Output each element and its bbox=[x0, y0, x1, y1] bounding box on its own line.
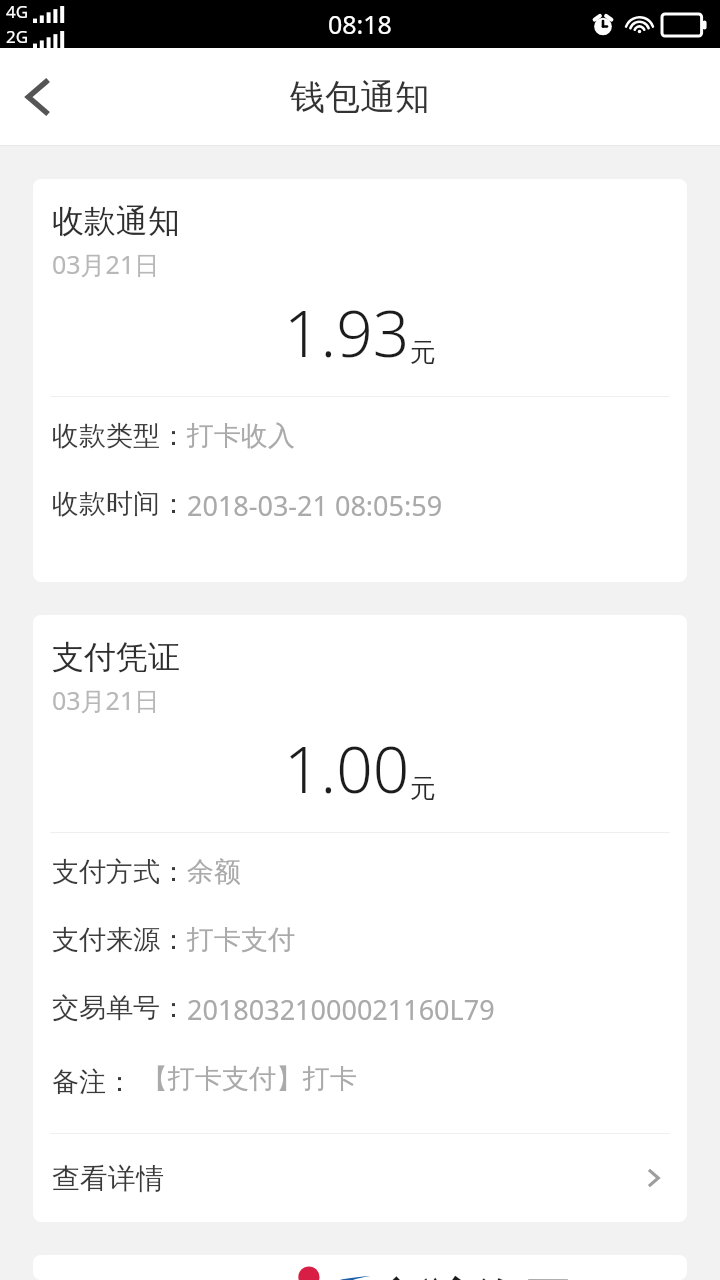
staticText: 1.93 bbox=[284, 289, 410, 376]
staticText: 收款类型： bbox=[52, 419, 187, 453]
staticText: 余额 bbox=[187, 855, 241, 889]
staticText: 支付来源： bbox=[52, 923, 187, 957]
button[interactable]: 支付凭证 bbox=[33, 615, 687, 1222]
staticText: 20180321000021160L79 bbox=[187, 991, 495, 1028]
staticText: 03月21日 bbox=[52, 683, 160, 717]
staticText: 03月21日 bbox=[52, 247, 160, 281]
button[interactable]: Back bbox=[0, 59, 76, 135]
button[interactable]: 收款通知 bbox=[33, 179, 687, 582]
button[interactable]: 收款通知 bbox=[33, 1255, 687, 1280]
staticText: 收款通知 bbox=[52, 201, 180, 241]
staticText: 交易单号： bbox=[52, 991, 187, 1025]
staticText: 08:18 bbox=[328, 7, 392, 41]
button[interactable]: 查看详情 bbox=[33, 1134, 687, 1222]
staticText: 支付方式： bbox=[52, 855, 187, 889]
staticText: 备注： bbox=[52, 1062, 141, 1099]
staticText: 查看详情 bbox=[52, 1161, 164, 1196]
staticText: 元 bbox=[410, 772, 436, 805]
staticText: 【打卡支付】打卡 bbox=[141, 1062, 357, 1096]
staticText: 打卡支付 bbox=[187, 923, 295, 957]
staticText: 2G bbox=[6, 25, 29, 48]
staticText: 4G bbox=[6, 0, 29, 23]
staticText: 打卡收入 bbox=[187, 419, 295, 453]
staticText: 收款时间： bbox=[52, 487, 187, 521]
staticText: 1.00 bbox=[284, 725, 410, 812]
staticText: 元 bbox=[410, 336, 436, 369]
staticText: 新滨海网 bbox=[383, 1273, 571, 1280]
staticText: 钱包通知 bbox=[290, 75, 430, 119]
staticText: 支付凭证 bbox=[52, 637, 180, 677]
staticText: 2018-03-21 08:05:59 bbox=[187, 487, 443, 524]
